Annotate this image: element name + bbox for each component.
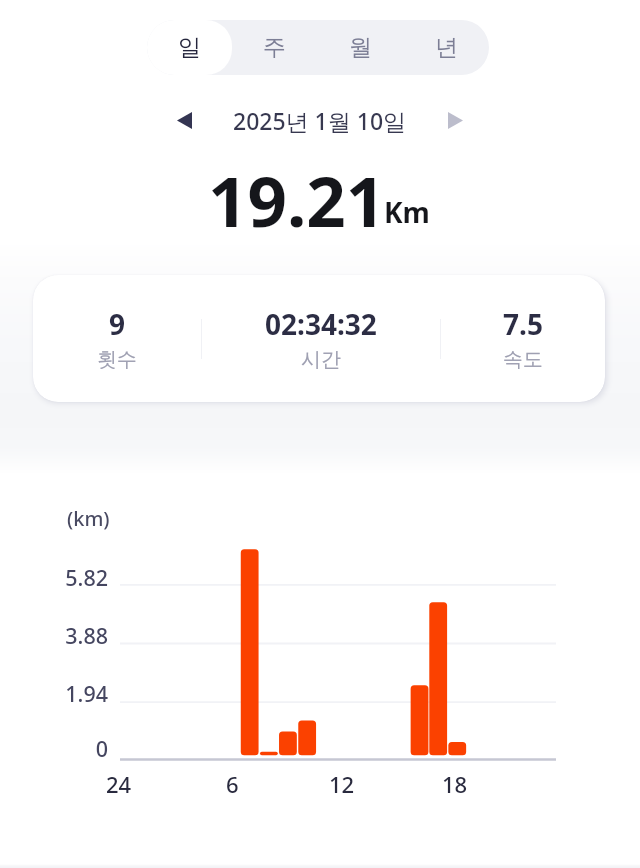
button[interactable]: Next day [433,98,477,142]
staticText: 24 [106,769,132,799]
staticText: 9 [109,305,126,343]
staticText: 1.94 [65,679,108,708]
button[interactable]: 9 [33,275,201,402]
staticText: 19.21 [208,153,386,239]
button[interactable]: 년 [403,20,489,75]
staticText: 12 [329,769,355,799]
staticText: 6 [226,769,239,799]
button[interactable]: 일 [147,20,232,75]
button[interactable]: 주 [232,20,317,75]
staticText: 3.88 [65,621,108,650]
staticText: 속도 [503,347,543,372]
staticText: Km [384,193,430,231]
staticText: 02:34:32 [265,305,377,343]
staticText: 18 [442,769,468,799]
button[interactable]: 7.5 [441,275,605,402]
staticText: 0 [95,734,108,763]
staticText: 일 [178,33,201,62]
button[interactable]: 02:34:32 [202,275,440,402]
staticText: 5.82 [65,563,108,592]
staticText: 년 [435,33,458,62]
staticText: 주 [263,33,286,62]
staticText: 2025년 1월 10일 [233,105,407,136]
staticText: 7.5 [503,305,543,343]
staticText: (km) [67,505,110,532]
staticText: 월 [349,33,372,62]
button[interactable]: Previous day [162,98,206,142]
staticText: 횟수 [97,347,137,372]
button[interactable]: 월 [317,20,403,75]
staticText: 시간 [301,347,341,372]
